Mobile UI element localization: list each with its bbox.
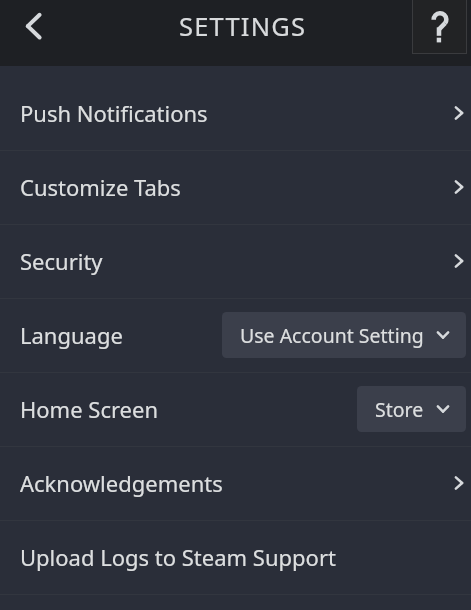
button[interactable]: Customize Tabs xyxy=(0,150,471,224)
staticText: Acknowledgements xyxy=(20,468,223,498)
button[interactable]: Upload Logs to Steam Support xyxy=(0,520,471,594)
button[interactable]: Help xyxy=(412,0,467,54)
staticText: Use Account Setting xyxy=(240,322,424,349)
button[interactable]: Back xyxy=(0,0,66,66)
button[interactable]: Acknowledgements xyxy=(0,446,471,520)
button[interactable]: Home Screen xyxy=(0,372,471,446)
button[interactable]: Security xyxy=(0,224,471,298)
staticText: Language xyxy=(20,320,123,350)
button[interactable]: Push Notifications xyxy=(0,76,471,150)
staticText: Upload Logs to Steam Support xyxy=(20,542,336,572)
staticText: Store xyxy=(375,396,424,423)
button[interactable]: Language xyxy=(0,298,471,372)
staticText: Push Notifications xyxy=(20,98,208,128)
staticText: Home Screen xyxy=(20,394,159,424)
button[interactable]: Use Account Setting xyxy=(222,312,466,358)
button[interactable]: Store xyxy=(357,386,466,432)
staticText: Customize Tabs xyxy=(20,172,181,202)
staticText: Security xyxy=(20,246,103,276)
staticText: SETTINGS xyxy=(179,9,307,44)
